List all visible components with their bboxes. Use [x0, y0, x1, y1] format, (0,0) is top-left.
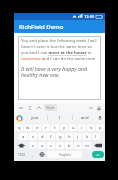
staticText: .	[86, 152, 88, 158]
button[interactable]: n	[74, 142, 82, 149]
button[interactable]: ,	[29, 151, 37, 158]
button[interactable]: i	[78, 124, 86, 131]
button[interactable]: Style	[44, 104, 57, 111]
staticText: x	[41, 143, 44, 149]
button[interactable]: v	[56, 142, 64, 149]
staticText: y	[63, 125, 66, 131]
staticText: You and place the following week I will …	[21, 38, 98, 62]
button[interactable]: Change language	[38, 151, 46, 158]
button[interactable]: s	[29, 133, 37, 140]
button[interactable]: m	[83, 142, 91, 149]
staticText: I	[59, 115, 61, 121]
staticText: m	[85, 143, 89, 149]
button[interactable]: c	[47, 142, 55, 149]
staticText: q	[18, 125, 21, 131]
button[interactable]: Voice input	[97, 115, 103, 121]
button[interactable]: Shift	[15, 142, 28, 149]
staticText: ?123	[18, 153, 25, 157]
button[interactable]: I	[48, 112, 72, 123]
staticText: l	[95, 134, 97, 140]
button[interactable]: Text color	[96, 105, 101, 110]
button[interactable]: ?123	[15, 151, 28, 158]
button[interactable]: Backspace	[92, 142, 104, 149]
staticText: ,	[32, 152, 34, 158]
staticText: and	[81, 115, 89, 121]
staticText: you	[31, 115, 39, 121]
staticText: b	[68, 143, 71, 149]
staticText: Style	[46, 105, 55, 110]
staticText: z	[32, 143, 34, 149]
button[interactable]: you	[22, 112, 47, 123]
staticText: o	[90, 125, 93, 131]
staticText: v	[59, 143, 62, 149]
button[interactable]: e	[33, 124, 41, 131]
button[interactable]: English	[47, 151, 82, 158]
button[interactable]: and	[73, 112, 97, 123]
staticText: i	[81, 125, 83, 131]
button[interactable]: More options	[88, 105, 93, 110]
button[interactable]: r	[42, 124, 50, 131]
staticText: RichField Demo	[19, 23, 64, 31]
staticText: 12:00	[84, 14, 95, 19]
button[interactable]: Undo	[36, 105, 41, 110]
staticText: h	[68, 134, 71, 140]
button[interactable]: y	[60, 124, 68, 131]
button[interactable]: Italic	[27, 105, 32, 110]
button[interactable]: a	[19, 133, 28, 140]
button[interactable]: f	[47, 133, 55, 140]
staticText: u	[72, 125, 75, 131]
button[interactable]: b	[65, 142, 73, 149]
button[interactable]: RichField Demo	[14, 20, 105, 33]
button[interactable]: Bold	[18, 105, 23, 110]
staticText: It will have a very happy and healthy ne…	[21, 65, 98, 79]
staticText: n	[77, 143, 80, 149]
staticText: s	[32, 134, 35, 140]
button[interactable]: t	[51, 124, 59, 131]
staticText: a	[22, 134, 25, 140]
button[interactable]: l	[92, 133, 100, 140]
staticText: f	[50, 134, 52, 140]
button[interactable]: z	[29, 142, 37, 149]
staticText: English	[59, 152, 71, 157]
button[interactable]: Enter	[92, 151, 104, 158]
button[interactable]: u	[69, 124, 77, 131]
button[interactable]: x	[38, 142, 46, 149]
staticText: t	[54, 125, 56, 131]
staticText: j	[77, 134, 79, 140]
button[interactable]: d	[38, 133, 46, 140]
staticText: d	[41, 134, 44, 140]
button[interactable]: Google	[16, 115, 22, 121]
staticText: p	[99, 125, 102, 131]
button[interactable]: g	[56, 133, 64, 140]
staticText: g	[59, 134, 62, 140]
staticText: w	[26, 125, 30, 131]
staticText: r	[45, 125, 47, 131]
button[interactable]: .	[83, 151, 91, 158]
button[interactable]: h	[65, 133, 73, 140]
staticText: k	[86, 134, 89, 140]
button[interactable]: p	[96, 124, 104, 131]
button[interactable]: o	[87, 124, 95, 131]
button[interactable]: w	[24, 124, 32, 131]
button[interactable]: k	[83, 133, 91, 140]
button[interactable]: j	[74, 133, 82, 140]
staticText: c	[50, 143, 53, 149]
button[interactable]: q	[15, 124, 23, 131]
button[interactable]: You and place the following week I will …	[21, 38, 98, 98]
staticText: e	[36, 125, 39, 131]
